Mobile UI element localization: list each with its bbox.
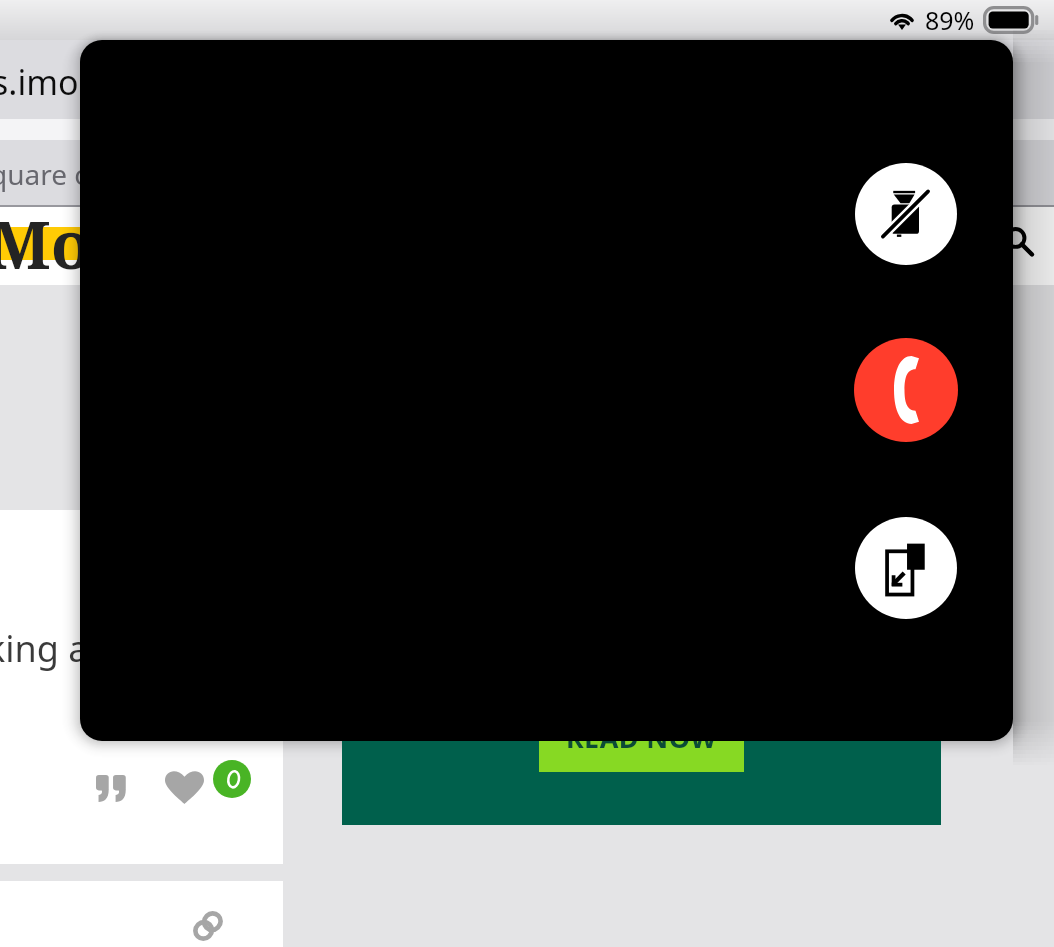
- staticText: s.imo: [0, 59, 79, 105]
- button[interactable]: READ NOW: [539, 705, 744, 772]
- button[interactable]: End call: [854, 338, 958, 442]
- staticText: READ NOW: [566, 719, 717, 756]
- button[interactable]: READ NOW: [342, 700, 941, 825]
- button[interactable]: Mute microphone: [855, 163, 957, 265]
- staticText: 89%: [925, 3, 975, 37]
- staticText: Mo: [0, 198, 92, 276]
- staticText: king at: [0, 624, 102, 673]
- button[interactable]: Minimize to picture in picture: [855, 517, 957, 619]
- button[interactable]: Search: [1005, 228, 1032, 255]
- button[interactable]: Copy link: [193, 911, 223, 941]
- button[interactable]: Reactions: [213, 760, 251, 798]
- staticText: quare o: [0, 155, 92, 193]
